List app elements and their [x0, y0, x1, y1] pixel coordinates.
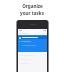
button[interactable]: [19, 62, 46, 65]
staticText: Organize: [22, 3, 43, 9]
button[interactable]: [18, 44, 47, 47]
button[interactable]: [19, 58, 46, 61]
button[interactable]: [19, 54, 46, 57]
button[interactable]: Search: [18, 32, 47, 35]
staticText: your tasks: [20, 10, 44, 16]
button[interactable]: [18, 36, 47, 39]
button[interactable]: [18, 40, 47, 43]
